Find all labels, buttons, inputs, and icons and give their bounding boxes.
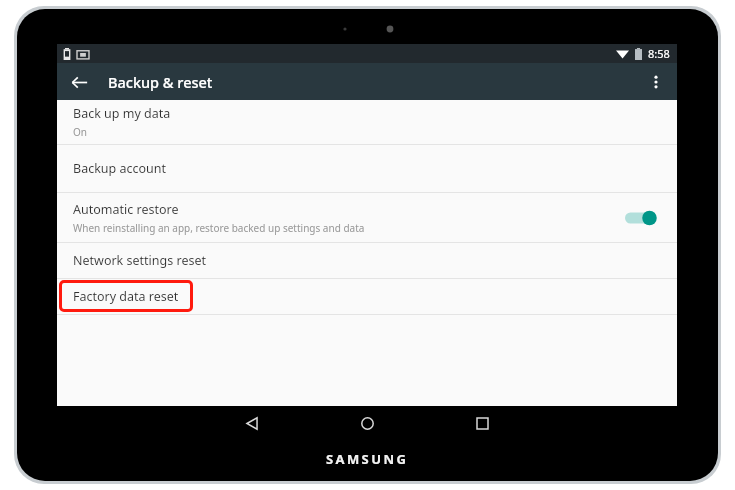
staticText: Network settings reset	[73, 252, 206, 269]
staticText: Backup & reset	[108, 72, 213, 92]
staticText: SAMSUNG	[326, 450, 409, 468]
button[interactable]: Back	[235, 406, 269, 440]
staticText: 8:58	[648, 46, 670, 61]
button[interactable]: More options	[641, 67, 671, 97]
staticText: On	[73, 125, 87, 139]
button[interactable]: Back up my data	[57, 100, 677, 144]
button[interactable]: Backup account	[57, 145, 677, 192]
button[interactable]: Automatic restore toggle	[625, 207, 659, 229]
button[interactable]: Factory data reset	[57, 279, 677, 314]
staticText: Automatic restore	[73, 201, 179, 218]
staticText: Back up my data	[73, 105, 171, 122]
staticText: Factory data reset	[73, 288, 179, 305]
button[interactable]: Network settings reset	[57, 243, 677, 278]
staticText: When reinstalling an app, restore backed…	[73, 221, 365, 235]
button[interactable]: Home	[350, 406, 384, 440]
button[interactable]: Recent apps	[465, 406, 499, 440]
button[interactable]: Back	[64, 67, 94, 97]
button[interactable]: Automatic restore	[57, 193, 677, 242]
staticText: Backup account	[73, 160, 167, 177]
